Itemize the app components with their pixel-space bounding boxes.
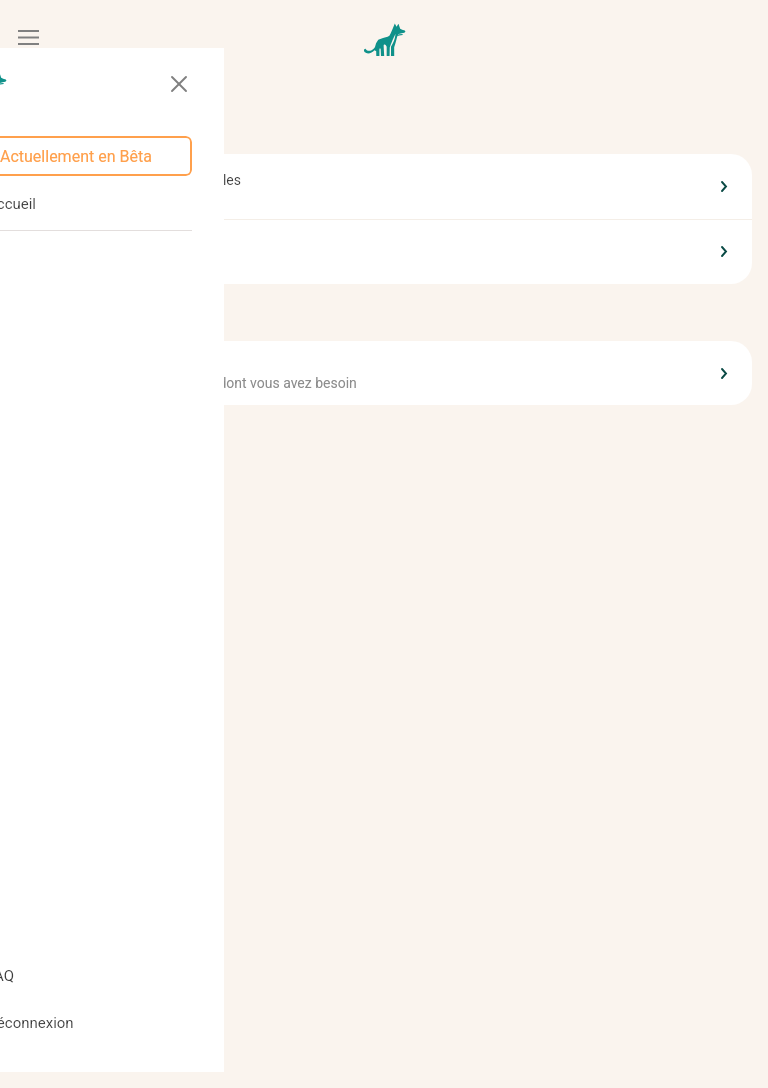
staticText: Informations personnelles — [78, 172, 242, 188]
button[interactable]: FAQ — [0, 958, 224, 994]
staticText: Retrouvez toute l'aide dont vous avez be… — [82, 375, 357, 391]
button[interactable]: Besoin d'aide ? — [16, 341, 752, 405]
button[interactable]: Mes animaux — [16, 219, 752, 284]
button[interactable]: Déconnexion — [0, 1005, 224, 1041]
button[interactable]: Informations personnelles — [16, 154, 752, 219]
button[interactable]: Actuellement en Bêta — [0, 136, 192, 176]
button[interactable]: Close navigation menu — [159, 64, 199, 104]
staticText: FAQ — [0, 967, 15, 985]
button[interactable]: Open navigation menu — [8, 17, 48, 57]
staticText: Déconnexion — [0, 1014, 74, 1032]
staticText: Actuellement en Bêta — [0, 147, 152, 166]
button[interactable]: Home — [352, 16, 418, 64]
button[interactable]: Accueil — [0, 186, 224, 222]
staticText: Accueil — [0, 195, 37, 213]
